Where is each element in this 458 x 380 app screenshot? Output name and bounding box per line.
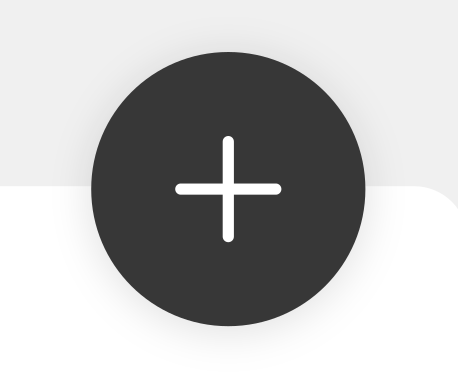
button[interactable]: Add [91,52,365,326]
